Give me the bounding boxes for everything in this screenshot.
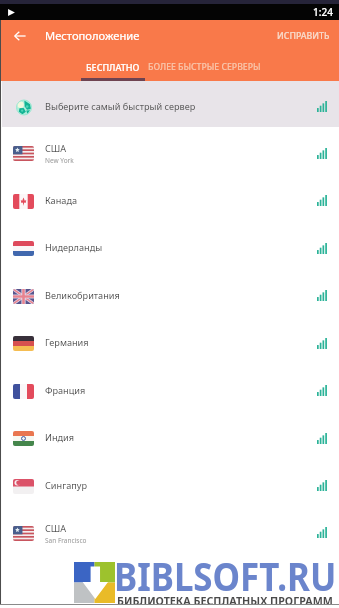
staticText: Местоположение: [45, 28, 140, 43]
button[interactable]: БОЛЕЕ БЫСТРЫЕ СЕРВЕРЫ: [146, 55, 262, 81]
staticText: Германия: [45, 336, 89, 348]
staticText: Сингапур: [45, 479, 87, 491]
button[interactable]: Канада: [0, 175, 339, 222]
button[interactable]: США: [0, 127, 339, 175]
staticText: ИСПРАВИТЬ: [277, 30, 330, 42]
staticText: США: [45, 142, 67, 154]
staticText: Индия: [45, 431, 75, 443]
staticText: Выберите самый быстрый сервер: [45, 100, 196, 112]
staticText: San Francisco: [45, 536, 87, 545]
staticText: BIBLSOFT.RU: [114, 548, 337, 602]
staticText: БЕСПЛАТНО: [86, 61, 140, 73]
staticText: Канада: [45, 194, 78, 206]
button[interactable]: Нидерланды: [0, 222, 339, 270]
button[interactable]: Сингапур: [0, 460, 339, 507]
staticText: Франция: [45, 384, 86, 396]
button[interactable]: Великобритания: [0, 270, 339, 317]
staticText: БОЛЕЕ БЫСТРЫЕ СЕРВЕРЫ: [148, 61, 261, 73]
button[interactable]: Back: [4, 20, 36, 51]
button[interactable]: Выберите самый быстрый сервер: [0, 81, 339, 127]
staticText: New York: [45, 156, 74, 165]
staticText: 1:24: [313, 5, 333, 19]
staticText: Великобритания: [45, 289, 120, 301]
staticText: Нидерланды: [45, 241, 103, 253]
button[interactable]: США: [0, 507, 339, 554]
staticText: БИБЛИОТЕКА БЕСПЛАТНЫХ ПРОГРАММ: [117, 594, 333, 608]
button[interactable]: Франция: [0, 365, 339, 412]
staticText: США: [45, 522, 67, 534]
button[interactable]: Индия: [0, 412, 339, 460]
button[interactable]: Германия: [0, 317, 339, 365]
button[interactable]: БЕСПЛАТНО: [79, 55, 146, 81]
button[interactable]: ИСПРАВИТЬ: [268, 30, 339, 42]
